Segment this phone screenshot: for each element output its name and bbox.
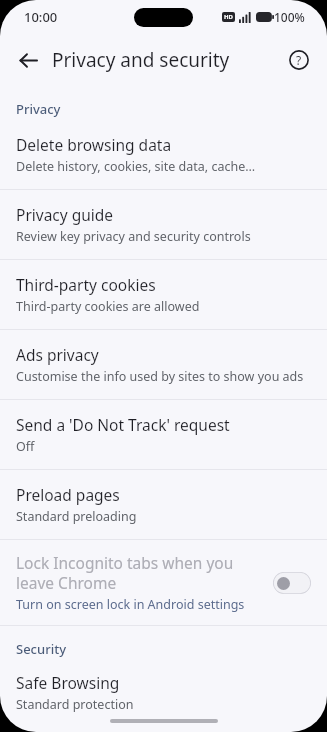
staticText: Lock Incognito tabs when you leave Chrom… [16,552,261,593]
staticText: Third-party cookies [16,274,156,295]
button[interactable]: Delete browsing data [0,124,327,189]
staticText: Send a 'Do Not Track' request [16,414,230,435]
staticText: ? [296,52,302,68]
button[interactable]: Lock Incognito tabs when you leave Chrom… [0,540,327,625]
staticText: Ads privacy [16,344,99,365]
button[interactable]: Third-party cookies [0,260,327,329]
button[interactable]: Back [10,42,46,78]
staticText: Privacy guide [16,204,114,225]
staticText: Turn on screen lock in Android settings [16,596,245,613]
staticText: Privacy [16,100,61,118]
staticText: Customise the info used by sites to show… [16,368,304,385]
staticText: Standard protection [16,696,134,713]
button[interactable]: Help [281,42,317,78]
staticText: Standard preloading [16,508,137,525]
button[interactable]: Safe Browsing [0,664,327,727]
staticText: 100% [274,9,305,25]
staticText: Review key privacy and security controls [16,228,251,245]
staticText: Preload pages [16,484,120,505]
staticText: Off [16,438,35,455]
button[interactable]: Send a 'Do Not Track' request [0,400,327,469]
staticText: Privacy and security [52,47,230,73]
staticText: HD [224,13,233,21]
staticText: 10:00 [24,8,58,26]
staticText: Delete browsing data [16,134,172,155]
button[interactable]: Privacy guide [0,190,327,259]
staticText: Security [16,640,66,658]
staticText: Third-party cookies are allowed [16,298,200,315]
staticText: Safe Browsing [16,672,120,693]
staticText: Delete history, cookies, site data, cach… [16,158,256,175]
button[interactable]: Preload pages [0,470,327,539]
button[interactable]: Ads privacy [0,330,327,399]
button[interactable]: Lock Incognito tabs toggle [273,572,311,594]
